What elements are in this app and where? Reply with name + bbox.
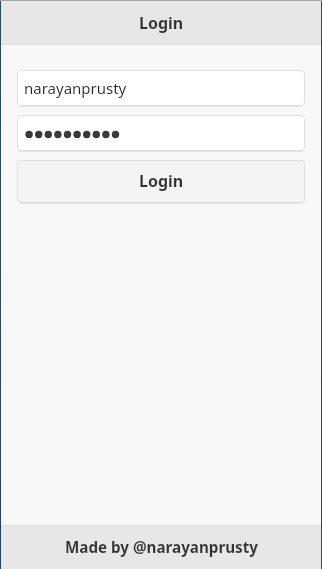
staticText: Login <box>139 12 184 34</box>
button[interactable]: Made by @narayanprusty <box>0 526 322 569</box>
staticText: Made by @narayanprusty <box>65 537 258 558</box>
staticText: narayanprusty <box>24 78 127 98</box>
button[interactable]: Password <box>17 115 305 151</box>
button[interactable]: Login <box>17 160 305 203</box>
staticText: Login <box>139 170 184 192</box>
button[interactable]: Login <box>0 0 322 44</box>
button[interactable]: narayanprusty <box>17 70 305 106</box>
